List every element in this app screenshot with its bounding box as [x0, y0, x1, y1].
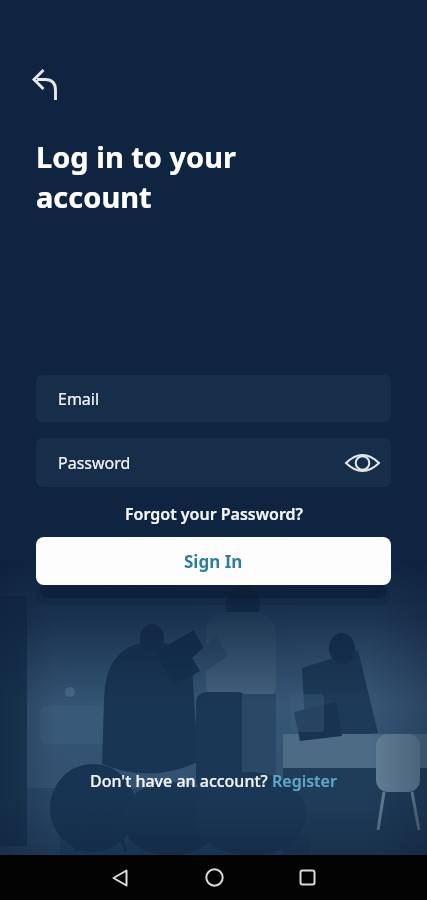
staticText: Don't have an account? — [90, 770, 272, 792]
button[interactable]: Email — [36, 375, 391, 422]
staticText: Password — [58, 452, 131, 474]
button[interactable]: Forgot your Password? — [0, 503, 427, 525]
staticText: Email — [58, 388, 100, 410]
button[interactable]: Password — [36, 438, 391, 487]
staticText: Sign In — [184, 550, 243, 573]
button[interactable]: Don't have an account? — [90, 770, 337, 792]
button[interactable]: Sign In — [36, 537, 391, 585]
staticText: Forgot your Password? — [125, 503, 303, 525]
button[interactable] — [96, 855, 144, 900]
button[interactable] — [190, 855, 238, 900]
button[interactable] — [26, 62, 66, 102]
staticText: Register — [272, 770, 337, 792]
staticText: Log in to your account — [36, 137, 237, 217]
button[interactable] — [283, 855, 331, 900]
